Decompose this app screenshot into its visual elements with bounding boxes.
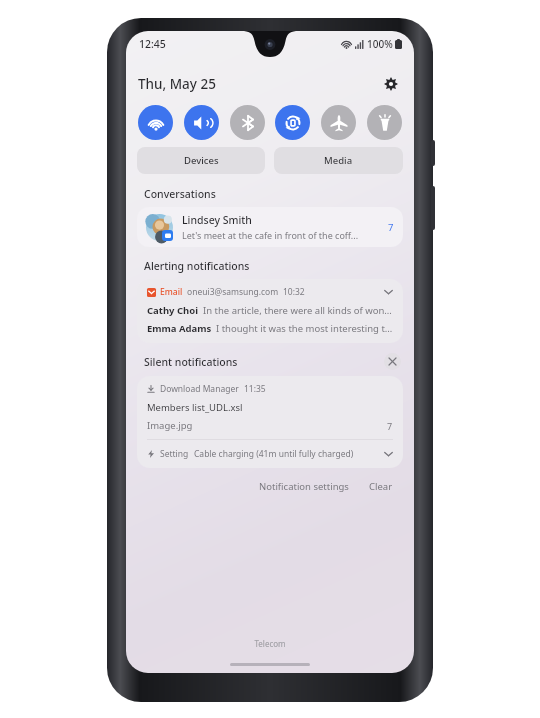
button[interactable]: Auto rotate	[275, 105, 310, 140]
button[interactable]: Media	[274, 147, 403, 174]
staticText: Silent notifications	[144, 355, 238, 369]
staticText: Let's meet at the cafe in front of the c…	[182, 229, 359, 241]
staticText: Notification settings	[259, 480, 349, 493]
staticText: Members list_UDL.xsl	[147, 401, 243, 414]
button[interactable]: Download Manager	[137, 376, 403, 439]
staticText: 7	[387, 420, 393, 432]
button[interactable]: Airplane mode	[321, 105, 356, 140]
staticText: Devices	[184, 154, 219, 167]
staticText: oneui3@samsung.com	[187, 286, 279, 298]
button[interactable]: Bluetooth	[230, 105, 265, 140]
button[interactable]: Notification settings	[255, 477, 353, 496]
staticText: Cathy Choi	[147, 304, 199, 317]
staticText: Media	[324, 154, 353, 167]
staticText: Alerting notifications	[144, 259, 250, 273]
button[interactable]: Email	[137, 279, 403, 343]
button[interactable]: Wi-Fi	[138, 105, 173, 140]
staticText: Telecom	[126, 638, 414, 649]
staticText: Image.jpg	[147, 419, 193, 432]
button[interactable]: Clear	[365, 477, 397, 496]
staticText: Thu, May 25	[138, 75, 216, 93]
staticText: Clear	[369, 480, 393, 493]
staticText: Conversations	[144, 187, 216, 201]
button[interactable]: Flashlight	[367, 105, 402, 140]
button[interactable]: Lindsey Smith	[137, 207, 403, 247]
button[interactable]: Setting	[137, 440, 403, 468]
staticText: 10:32	[283, 286, 305, 298]
staticText: Email	[160, 286, 183, 298]
staticText: 100%	[367, 37, 393, 51]
staticText: 11:35	[244, 383, 266, 395]
staticText: Emma Adams	[147, 322, 212, 335]
staticText: I thought it was the most interesting th…	[216, 322, 393, 335]
staticText: Cable charging (41m until fully charged)	[194, 448, 354, 460]
button[interactable]: Settings	[378, 71, 404, 97]
staticText: In the article, there were all kinds of …	[203, 304, 393, 317]
staticText: Download Manager	[160, 383, 239, 395]
staticText: Lindsey Smith	[182, 213, 252, 227]
staticText: 7	[388, 221, 394, 234]
staticText: 12:45	[139, 37, 166, 51]
button[interactable]: Sound	[184, 105, 219, 140]
staticText: Setting	[160, 448, 189, 460]
button[interactable]: Devices	[137, 147, 265, 174]
button[interactable]: Dismiss silent notifications	[384, 353, 401, 370]
